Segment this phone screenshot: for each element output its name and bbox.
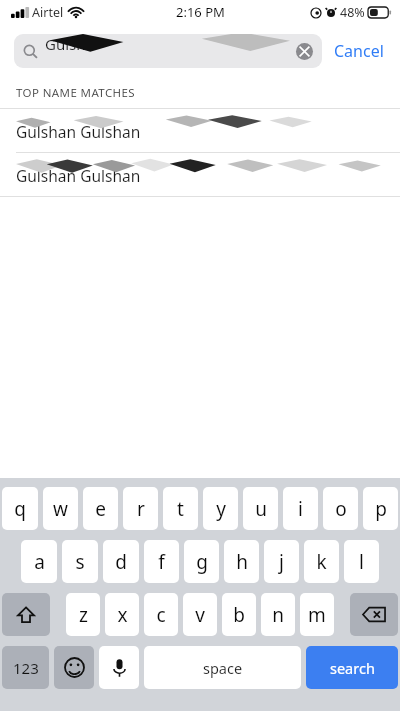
button[interactable]: Clear text [296,43,313,60]
button[interactable]: g [184,540,219,583]
staticText: p [375,496,387,522]
staticText: k [316,549,327,575]
button[interactable]: Backspace [350,593,398,636]
staticText: 48% [340,4,365,21]
staticText: Gulsh [45,34,86,54]
staticText: r [137,496,145,522]
staticText: a [34,549,45,575]
staticText: s [75,549,85,575]
button[interactable]: 123 [2,646,49,689]
staticText: c [156,602,166,628]
button[interactable]: u [243,487,278,530]
button[interactable]: Emoji [54,646,94,689]
button[interactable]: z [66,593,100,636]
button[interactable]: r [123,487,158,530]
staticText: Gulshan Gulshan [16,121,141,142]
button[interactable]: space [144,646,301,689]
staticText: i [298,496,303,522]
staticText: t [177,496,184,522]
button[interactable]: i [283,487,318,530]
staticText: o [335,496,347,522]
button[interactable]: b [222,593,256,636]
button[interactable]: q [2,487,38,530]
staticText: z [79,602,88,628]
button[interactable]: n [261,593,295,636]
staticText: 123 [13,658,39,678]
button[interactable]: j [264,540,299,583]
button[interactable]: l [344,540,379,583]
staticText: Gulshan Gulshan [16,165,141,186]
staticText: Cancel [334,40,384,62]
button[interactable]: p [363,487,398,530]
staticText: q [14,496,26,522]
staticText: g [196,549,208,575]
button[interactable]: o [323,487,358,530]
staticText: w [53,496,68,522]
button[interactable]: Gulshan Gulshan [0,153,400,196]
button[interactable]: f [144,540,179,583]
staticText: n [272,602,284,628]
staticText: j [279,549,284,575]
staticText: d [115,549,127,575]
staticText: x [117,602,128,628]
button[interactable]: search [306,646,398,689]
button[interactable]: h [224,540,259,583]
button[interactable]: c [144,593,178,636]
button[interactable]: x [105,593,139,636]
button[interactable]: t [163,487,198,530]
button[interactable]: Voice input [99,646,139,689]
staticText: e [95,496,106,522]
button[interactable]: y [203,487,238,530]
staticText: 2:16 PM [176,3,225,21]
button[interactable]: w [43,487,78,530]
button[interactable]: v [183,593,217,636]
button[interactable]: e [83,487,118,530]
staticText: f [158,549,165,575]
staticText: search [330,658,375,678]
button[interactable]: Gulshan Gulshan [0,109,400,152]
button[interactable]: s [62,540,98,583]
button[interactable]: Shift [2,593,50,636]
button[interactable]: k [304,540,339,583]
staticText: v [195,602,205,628]
staticText: y [216,496,226,522]
button[interactable]: d [103,540,139,583]
staticText: space [203,658,243,678]
staticText: h [236,549,248,575]
button[interactable]: Cancel [332,36,386,66]
staticText: b [233,602,245,628]
staticText: u [255,496,267,522]
staticText: m [308,602,326,628]
button[interactable]: m [300,593,334,636]
staticText: l [359,549,364,575]
staticText: TOP NAME MATCHES [16,85,136,101]
button[interactable]: Gulsh [14,34,322,68]
button[interactable]: a [21,540,57,583]
staticText: Airtel [32,4,64,21]
